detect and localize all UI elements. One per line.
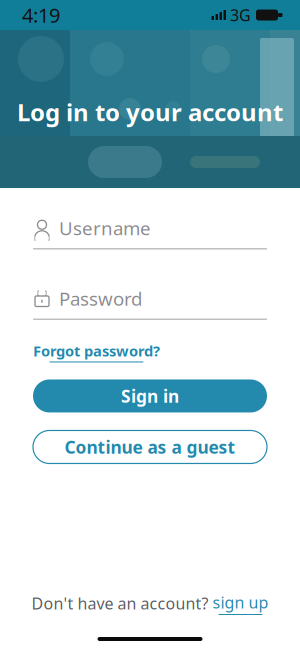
staticText: Sign in [121,384,179,407]
staticText: 3G [230,4,251,26]
staticText: Don't have an account? [31,593,208,614]
button[interactable]: Sign in [33,379,267,412]
staticText: Password [59,286,142,311]
staticText: Continue as a guest [64,435,235,458]
staticText: sign up [212,592,268,613]
staticText: Username [59,216,151,240]
button[interactable]: Forgot password? [33,341,160,362]
button[interactable]: Continue as a guest [33,430,267,463]
staticText: Log in to your account [17,96,283,128]
button[interactable]: sign up [212,592,268,615]
staticText: 4:19 [22,2,60,28]
staticText: Forgot password? [33,341,160,360]
